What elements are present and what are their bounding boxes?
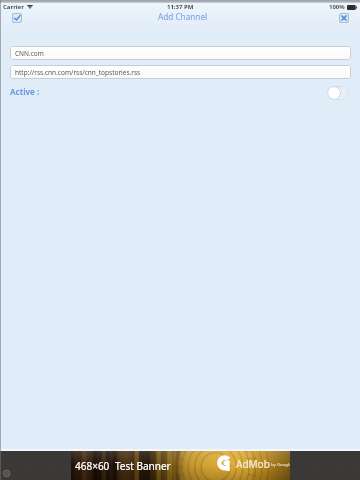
staticText: Test Banner bbox=[115, 459, 171, 473]
button[interactable]: http://rss.cnn.com/rss/cnn_topstories.rs… bbox=[10, 65, 351, 79]
staticText: 11:37 PM bbox=[167, 3, 194, 11]
staticText: http://rss.cnn.com/rss/cnn_topstories.rs… bbox=[15, 68, 141, 77]
button[interactable]: Save channel bbox=[12, 13, 22, 23]
staticText: 468×60 bbox=[75, 459, 110, 473]
staticText: Carrier bbox=[3, 3, 24, 11]
button[interactable]: Active : bbox=[10, 86, 40, 97]
button[interactable]: CNN.com bbox=[10, 46, 351, 60]
staticText: by Google bbox=[271, 462, 290, 468]
staticText: Active : bbox=[10, 86, 40, 97]
button[interactable]: Active toggle bbox=[327, 86, 349, 100]
staticText: Add Channel bbox=[158, 11, 208, 22]
staticText: 100% bbox=[329, 3, 345, 11]
button[interactable]: Advertisement bbox=[71, 451, 290, 480]
button[interactable]: Cancel bbox=[339, 13, 349, 23]
staticText: AdMob bbox=[236, 457, 270, 471]
staticText: CNN.com bbox=[15, 49, 44, 58]
